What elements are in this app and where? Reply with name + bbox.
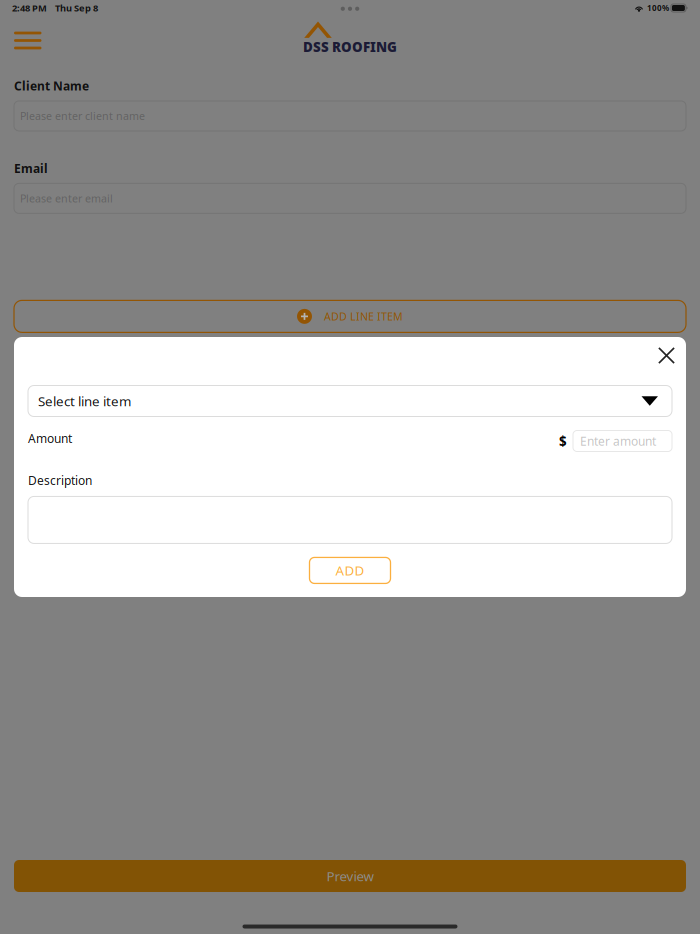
staticText: Email <box>14 160 48 176</box>
staticText: Please enter email <box>20 191 113 205</box>
button[interactable]: Menu <box>0 16 51 57</box>
button[interactable]: Close <box>646 337 686 372</box>
staticText: Thu Sep 8 <box>55 2 98 14</box>
staticText: 2:48 PM <box>12 2 47 14</box>
button[interactable]: ADD <box>309 557 390 583</box>
staticText: Select line item <box>38 392 131 410</box>
staticText: Description <box>28 472 92 488</box>
staticText: DSS ROOFING <box>303 38 397 56</box>
button[interactable]: ADD LINE ITEM <box>14 300 686 332</box>
staticText: ADD LINE ITEM <box>324 309 403 323</box>
staticText: Please enter client name <box>20 109 145 123</box>
staticText: Preview <box>326 867 373 885</box>
staticText: ADD <box>335 562 364 579</box>
button[interactable]: Preview <box>14 860 686 892</box>
staticText: 100% <box>647 3 669 13</box>
staticText: Amount <box>28 430 72 446</box>
staticText: Client Name <box>14 78 89 94</box>
staticText: $ <box>559 432 567 450</box>
staticText: Enter amount <box>580 433 656 449</box>
button[interactable]: Select line item <box>28 385 672 416</box>
